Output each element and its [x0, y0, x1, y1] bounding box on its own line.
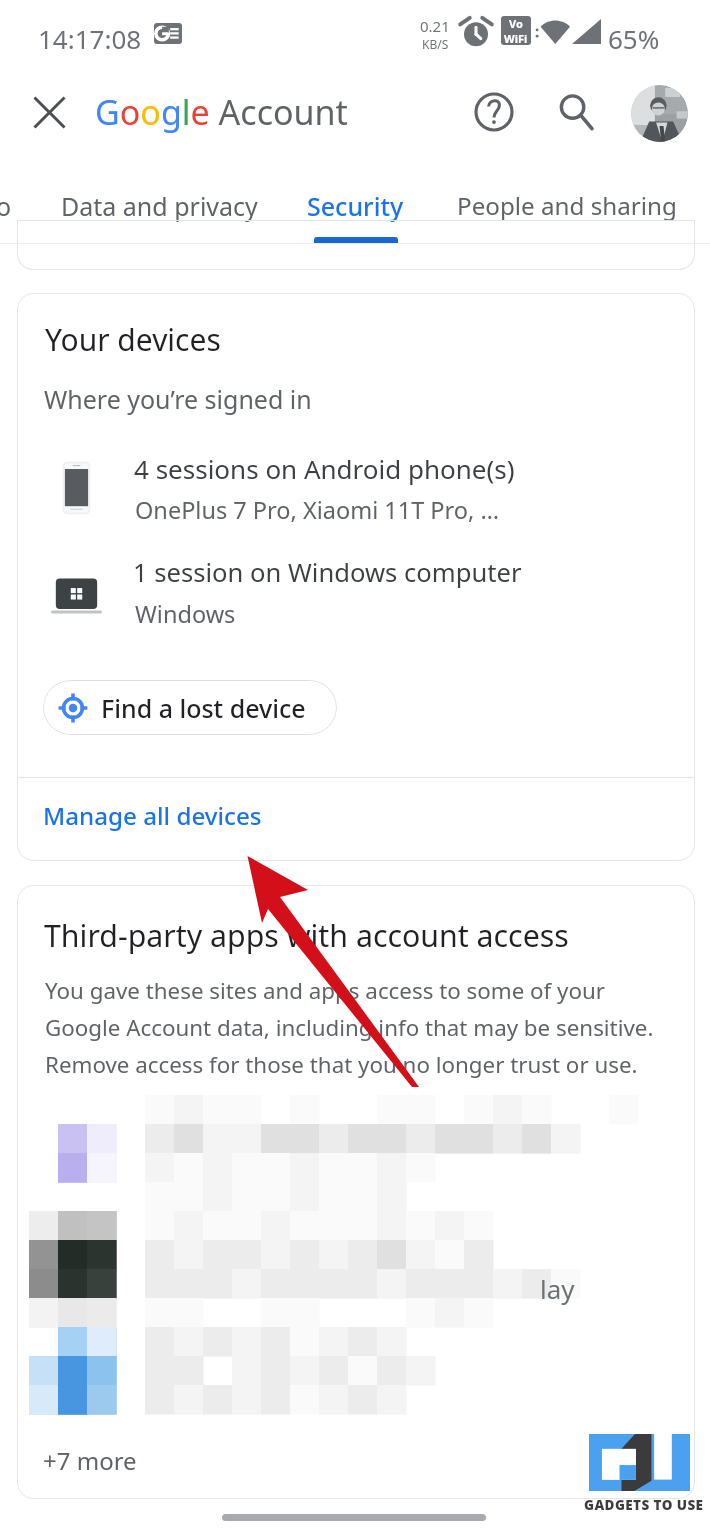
staticText: 4 sessions on Android phone(s)	[134, 451, 515, 486]
button[interactable]: Close	[21, 84, 77, 140]
staticText: Windows	[135, 598, 236, 630]
staticText: OnePlus 7 Pro, Xiaomi 11T Pro, …	[135, 494, 500, 526]
button[interactable]: Help	[466, 84, 522, 140]
staticText: 14:17:08	[38, 21, 142, 56]
button[interactable]: Find a lost device	[43, 680, 337, 735]
staticText: Your devices	[45, 319, 221, 360]
staticText: Vo	[509, 16, 523, 31]
staticText: o	[0, 189, 12, 223]
staticText: Data and privacy	[61, 189, 258, 223]
staticText: GADGETS TO USE	[584, 1496, 704, 1514]
staticText: 1 session on Windows computer	[133, 555, 522, 590]
staticText: Google Account	[95, 89, 348, 135]
button[interactable]: Search	[548, 84, 604, 140]
button[interactable]: Data and privacy	[51, 178, 268, 234]
staticText: +7 more	[43, 1444, 137, 1477]
staticText: Manage all devices	[43, 799, 262, 832]
button[interactable]: Google Account profile picture	[631, 85, 688, 142]
staticText: You gave these sites and apps access to …	[45, 975, 675, 1079]
staticText: WiFi	[504, 31, 528, 45]
button[interactable]: Manage all devices	[17, 778, 695, 861]
button[interactable]: o	[0, 178, 22, 234]
staticText: 65%	[608, 21, 660, 56]
staticText: People and sharing	[457, 189, 677, 222]
staticText: Security	[307, 189, 404, 223]
button[interactable]: People and sharing	[447, 178, 687, 233]
staticText: 0.21	[420, 16, 450, 36]
staticText: Find a lost device	[101, 691, 306, 725]
button[interactable]: Security	[297, 178, 414, 234]
staticText: KB/S	[422, 36, 449, 52]
staticText: lay	[540, 1271, 575, 1306]
staticText: Where you’re signed in	[44, 382, 312, 416]
staticText: Third-party apps with account access	[44, 915, 569, 956]
